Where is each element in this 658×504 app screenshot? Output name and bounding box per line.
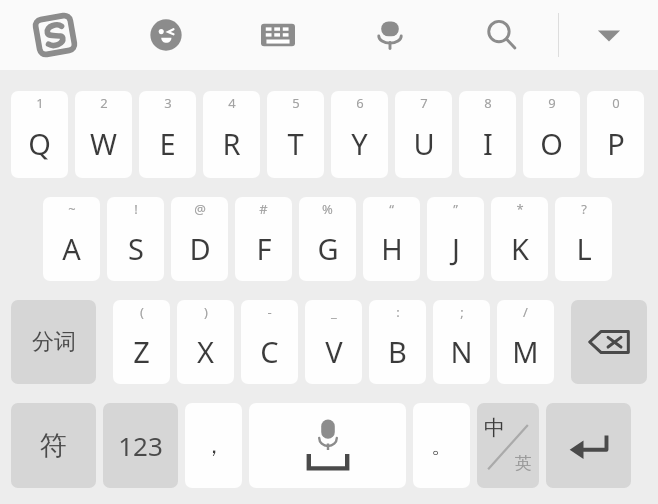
staticText: - (267, 303, 272, 321)
staticText: 符 (40, 429, 67, 463)
staticText: E (159, 124, 176, 163)
button[interactable]: _ (305, 300, 362, 384)
button[interactable]: * (491, 197, 548, 281)
staticText: M (512, 332, 539, 371)
button[interactable]: Emoji (110, 0, 222, 70)
button[interactable]: 5 (267, 91, 324, 178)
button[interactable]: Enter (546, 403, 631, 488)
staticText: ) (204, 303, 208, 321)
staticText: Z (133, 332, 150, 371)
staticText: # (259, 200, 268, 218)
staticText: 0 (612, 94, 620, 112)
staticText: B (388, 332, 407, 371)
staticText: 5 (292, 94, 300, 112)
staticText: T (287, 124, 304, 163)
staticText: F (256, 229, 272, 268)
staticText: X (197, 332, 214, 371)
button[interactable]: Hide keyboard (559, 0, 658, 70)
staticText: U (413, 124, 435, 163)
staticText: “ (389, 200, 394, 218)
staticText: @ (194, 200, 206, 218)
button[interactable]: ) (177, 300, 234, 384)
button[interactable]: 7 (395, 91, 452, 178)
button[interactable]: Voice input (334, 0, 446, 70)
button[interactable]: 2 (75, 91, 132, 178)
staticText: C (260, 332, 279, 371)
button[interactable]: ， (185, 403, 242, 488)
button[interactable]: Sogou logo (0, 0, 110, 70)
button[interactable]: ; (433, 300, 490, 384)
button[interactable]: 6 (331, 91, 388, 178)
button[interactable]: - (241, 300, 298, 384)
button[interactable]: @ (171, 197, 228, 281)
button[interactable]: 分词 (11, 300, 96, 384)
staticText: 。 (431, 432, 453, 460)
staticText: P (607, 124, 625, 163)
staticText: S (128, 229, 144, 268)
staticText: ; (460, 303, 464, 321)
button[interactable]: 9 (523, 91, 580, 178)
staticText: W (90, 124, 117, 163)
button[interactable]: 4 (203, 91, 260, 178)
staticText: N (450, 332, 473, 371)
staticText: G (317, 229, 339, 268)
staticText: K (511, 229, 529, 268)
staticText: 123 (118, 428, 163, 463)
staticText: 分词 (32, 328, 76, 356)
button[interactable]: 1 (11, 91, 68, 178)
staticText: I (483, 124, 493, 163)
staticText: 2 (100, 94, 108, 112)
button[interactable]: : (369, 300, 426, 384)
button[interactable]: “ (363, 197, 420, 281)
button[interactable]: ? (555, 197, 612, 281)
button[interactable]: 符 (11, 403, 96, 488)
button[interactable]: 。 (413, 403, 470, 488)
button[interactable]: Keyboard layout (222, 0, 334, 70)
staticText: ” (453, 200, 458, 218)
button[interactable]: ! (107, 197, 164, 281)
button[interactable]: ” (427, 197, 484, 281)
staticText: 3 (164, 94, 172, 112)
staticText: V (325, 332, 343, 371)
staticText: 7 (420, 94, 428, 112)
staticText: / (523, 303, 528, 321)
staticText: J (452, 229, 460, 268)
button[interactable]: Chinese English toggle (477, 403, 539, 488)
staticText: ! (134, 200, 138, 218)
staticText: 中 (484, 415, 505, 441)
staticText: 英 (515, 453, 532, 474)
button[interactable]: 3 (139, 91, 196, 178)
staticText: _ (331, 303, 337, 321)
button[interactable]: Search (446, 0, 558, 70)
staticText: ， (203, 432, 225, 460)
button[interactable]: 8 (459, 91, 516, 178)
staticText: % (322, 200, 333, 218)
staticText: D (189, 229, 211, 268)
staticText: O (540, 124, 563, 163)
staticText: 6 (356, 94, 364, 112)
staticText: 8 (484, 94, 492, 112)
button[interactable]: 123 (103, 403, 178, 488)
staticText: L (576, 229, 592, 268)
staticText: ( (140, 303, 144, 321)
staticText: * (516, 200, 524, 218)
staticText: 9 (548, 94, 556, 112)
button[interactable]: Space (249, 403, 406, 488)
staticText: R (222, 124, 241, 163)
button[interactable]: ~ (43, 197, 100, 281)
staticText: 1 (36, 94, 44, 112)
staticText: ~ (68, 200, 76, 218)
button[interactable]: 0 (587, 91, 644, 178)
staticText: Q (28, 124, 51, 163)
button[interactable]: ( (113, 300, 170, 384)
button[interactable]: # (235, 197, 292, 281)
button[interactable]: / (497, 300, 554, 384)
staticText: Y (351, 124, 368, 163)
staticText: : (396, 303, 400, 321)
staticText: H (381, 229, 403, 268)
button[interactable]: % (299, 197, 356, 281)
button[interactable]: Backspace (571, 300, 647, 384)
staticText: 4 (228, 94, 236, 112)
staticText: A (62, 229, 81, 268)
staticText: ? (581, 200, 587, 218)
